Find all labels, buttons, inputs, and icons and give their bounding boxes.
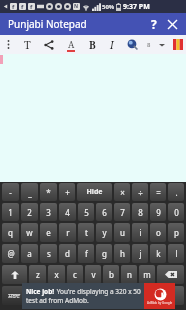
button[interactable]: Text — [16, 35, 38, 54]
button[interactable]: v — [85, 265, 101, 284]
staticText: = — [156, 187, 161, 198]
button[interactable]: Bold — [82, 35, 102, 54]
button[interactable]: 3 — [40, 203, 57, 221]
staticText: + — [65, 187, 70, 198]
staticText: 7 — [120, 207, 125, 218]
button[interactable]: 1 — [2, 203, 19, 221]
staticText: 50% — [102, 3, 115, 11]
button[interactable] — [157, 265, 184, 284]
staticText: 8 — [138, 207, 143, 218]
staticText: _ — [28, 187, 32, 198]
button[interactable]: Nice job! — [22, 283, 175, 309]
button[interactable] — [0, 54, 186, 182]
button[interactable]: 7 — [114, 203, 130, 221]
button[interactable]: . — [168, 183, 184, 201]
button[interactable]: Share — [38, 35, 60, 54]
button[interactable]: h — [114, 244, 130, 263]
staticText: AdMob by Google — [147, 301, 173, 305]
button[interactable]: / — [121, 286, 137, 305]
staticText: y — [102, 227, 107, 238]
button[interactable]: s — [40, 244, 57, 263]
button[interactable]: Text color — [60, 35, 82, 54]
button[interactable]: k — [150, 244, 166, 263]
staticText: B — [89, 38, 96, 52]
button[interactable]: × — [114, 183, 130, 201]
staticText: d — [65, 248, 70, 259]
button[interactable]: 6 — [96, 203, 112, 221]
button[interactable]: Highlight color — [122, 35, 142, 54]
staticText: Punjabi Notepad — [8, 17, 87, 31]
button[interactable]: = — [150, 183, 166, 201]
button[interactable]: g — [96, 244, 112, 263]
button[interactable]: f — [78, 244, 94, 263]
staticText: Nice job! — [26, 287, 55, 296]
button[interactable]: $ — [27, 286, 43, 305]
button[interactable]: t — [78, 223, 94, 242]
staticText: s — [47, 248, 51, 259]
button[interactable]: Italic — [102, 35, 122, 54]
button[interactable]: \ — [45, 286, 61, 305]
staticText: @ — [7, 248, 15, 259]
button[interactable]: Close — [163, 15, 181, 33]
staticText: q — [8, 227, 13, 238]
staticText: × — [120, 187, 125, 198]
staticText: j — [139, 248, 142, 259]
staticText: f — [30, 3, 33, 10]
button[interactable]: c — [67, 265, 83, 284]
button[interactable]: i — [132, 223, 148, 242]
button[interactable]: Font size dropdown — [155, 35, 169, 54]
button[interactable]: d — [59, 244, 76, 263]
button[interactable]: More options — [0, 35, 16, 54]
staticText: 0 — [174, 207, 179, 218]
staticText: z — [36, 269, 40, 280]
button[interactable]: x — [48, 265, 65, 284]
staticText: T — [24, 37, 31, 52]
button[interactable]: w — [21, 223, 38, 242]
button[interactable]: + — [59, 183, 75, 201]
button[interactable]: 2 — [21, 203, 38, 221]
staticText: p — [174, 227, 179, 238]
button[interactable]: - — [2, 183, 19, 201]
button[interactable]: b — [103, 265, 119, 284]
button[interactable]: 8 — [132, 203, 148, 221]
staticText: g — [102, 248, 107, 259]
button[interactable]: e — [40, 223, 57, 242]
button[interactable]: Font size — [142, 35, 155, 54]
button[interactable]: * — [40, 183, 57, 201]
button[interactable]: q — [2, 223, 19, 242]
button[interactable]: ÷ — [132, 183, 148, 201]
button[interactable]: a — [21, 244, 38, 263]
button[interactable]: _ — [21, 183, 38, 201]
button[interactable]: 9 — [150, 203, 166, 221]
button[interactable]: r — [59, 223, 76, 242]
button[interactable]: Hide — [77, 183, 112, 201]
staticText: x — [54, 269, 59, 280]
button[interactable]: Help — [145, 15, 163, 33]
button[interactable] — [2, 265, 27, 284]
button[interactable]: £ — [139, 286, 155, 305]
button[interactable] — [157, 286, 184, 305]
button[interactable] — [63, 286, 119, 305]
button[interactable]: n — [121, 265, 137, 284]
button[interactable]: y — [96, 223, 112, 242]
staticText: / — [128, 290, 131, 301]
staticText: 9:37 PM — [123, 2, 150, 12]
button[interactable]: o — [150, 223, 166, 242]
button[interactable]: p — [168, 223, 184, 242]
button[interactable]: 4 — [59, 203, 76, 221]
button[interactable]: u — [114, 223, 130, 242]
button[interactable]: 5 — [78, 203, 94, 221]
staticText: r — [66, 227, 70, 238]
staticText: v — [91, 269, 96, 280]
button[interactable]: m — [139, 265, 155, 284]
button[interactable]: l — [168, 244, 184, 263]
button[interactable]: z — [29, 265, 46, 284]
button[interactable]: @ — [2, 244, 19, 263]
button[interactable]: ਸ਼ਬਦ — [2, 286, 25, 305]
staticText: 2 — [27, 207, 32, 218]
button[interactable]: j — [132, 244, 148, 263]
button[interactable]: 0 — [168, 203, 184, 221]
button[interactable]: Language — [169, 35, 186, 54]
staticText: 5 — [84, 207, 89, 218]
